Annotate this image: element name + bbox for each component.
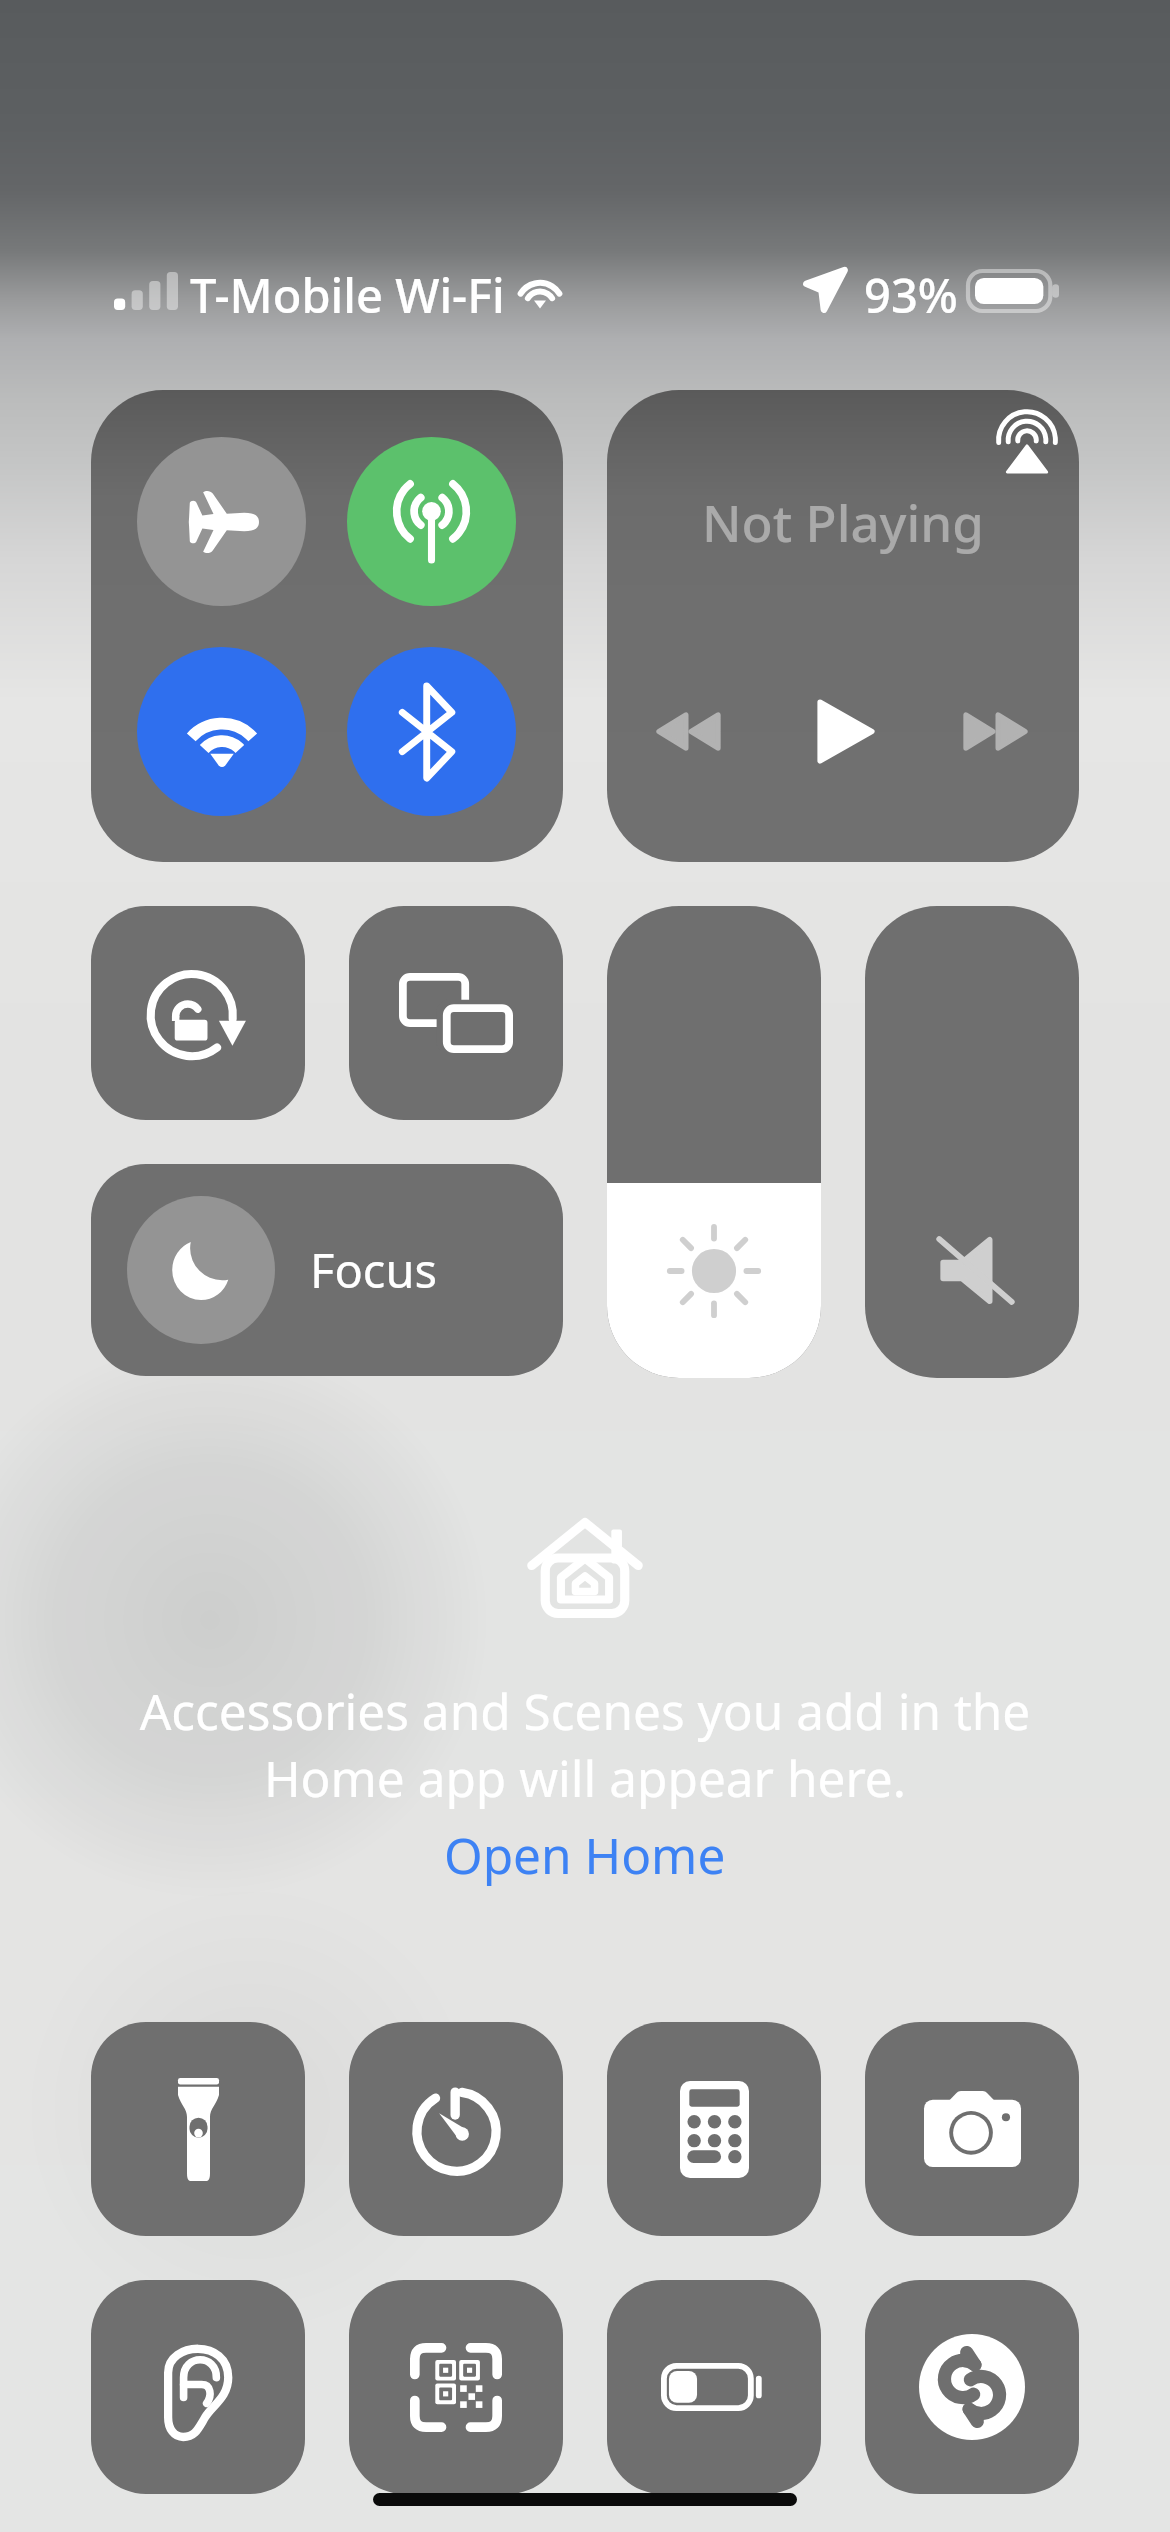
button[interactable]: AirPlay: [989, 405, 1065, 481]
button[interactable]: Camera: [865, 2022, 1079, 2236]
staticText: 93%: [864, 263, 958, 327]
button[interactable]: Play: [809, 685, 883, 777]
staticText: Accessories and Scenes you add in the Ho…: [0, 1677, 1170, 1811]
button[interactable]: Calculator: [607, 2022, 821, 2236]
button[interactable]: Hearing: [91, 2280, 305, 2494]
staticText: T-Mobile Wi-Fi: [190, 263, 505, 327]
button[interactable]: Next: [955, 685, 1036, 777]
button[interactable]: Wi-Fi: [137, 647, 306, 816]
staticText: Not Playing: [702, 487, 984, 556]
staticText: Focus: [310, 1238, 437, 1302]
button[interactable]: Focus: [91, 1164, 563, 1376]
button[interactable]: Open Home: [0, 1816, 1170, 1892]
button[interactable]: Airplane Mode: [137, 437, 306, 606]
button[interactable]: Bluetooth: [347, 647, 516, 816]
button[interactable]: AirPlay: [607, 390, 1079, 862]
button[interactable]: Rotation Lock: [91, 906, 305, 1120]
button[interactable]: Airplane Mode: [91, 390, 563, 862]
staticText: Open Home: [444, 1821, 726, 1888]
button[interactable]: Cellular Data: [347, 437, 516, 606]
button[interactable]: Brightness: [607, 906, 821, 1378]
button[interactable]: Screen Mirroring: [349, 906, 563, 1120]
button[interactable]: Shazam: [865, 2280, 1079, 2494]
button[interactable]: Low Power Mode: [607, 2280, 821, 2494]
button[interactable]: Flashlight: [91, 2022, 305, 2236]
button[interactable]: Code Scanner: [349, 2280, 563, 2494]
button[interactable]: Previous: [648, 685, 729, 777]
button[interactable]: Volume: [865, 906, 1079, 1378]
button[interactable]: Timer: [349, 2022, 563, 2236]
